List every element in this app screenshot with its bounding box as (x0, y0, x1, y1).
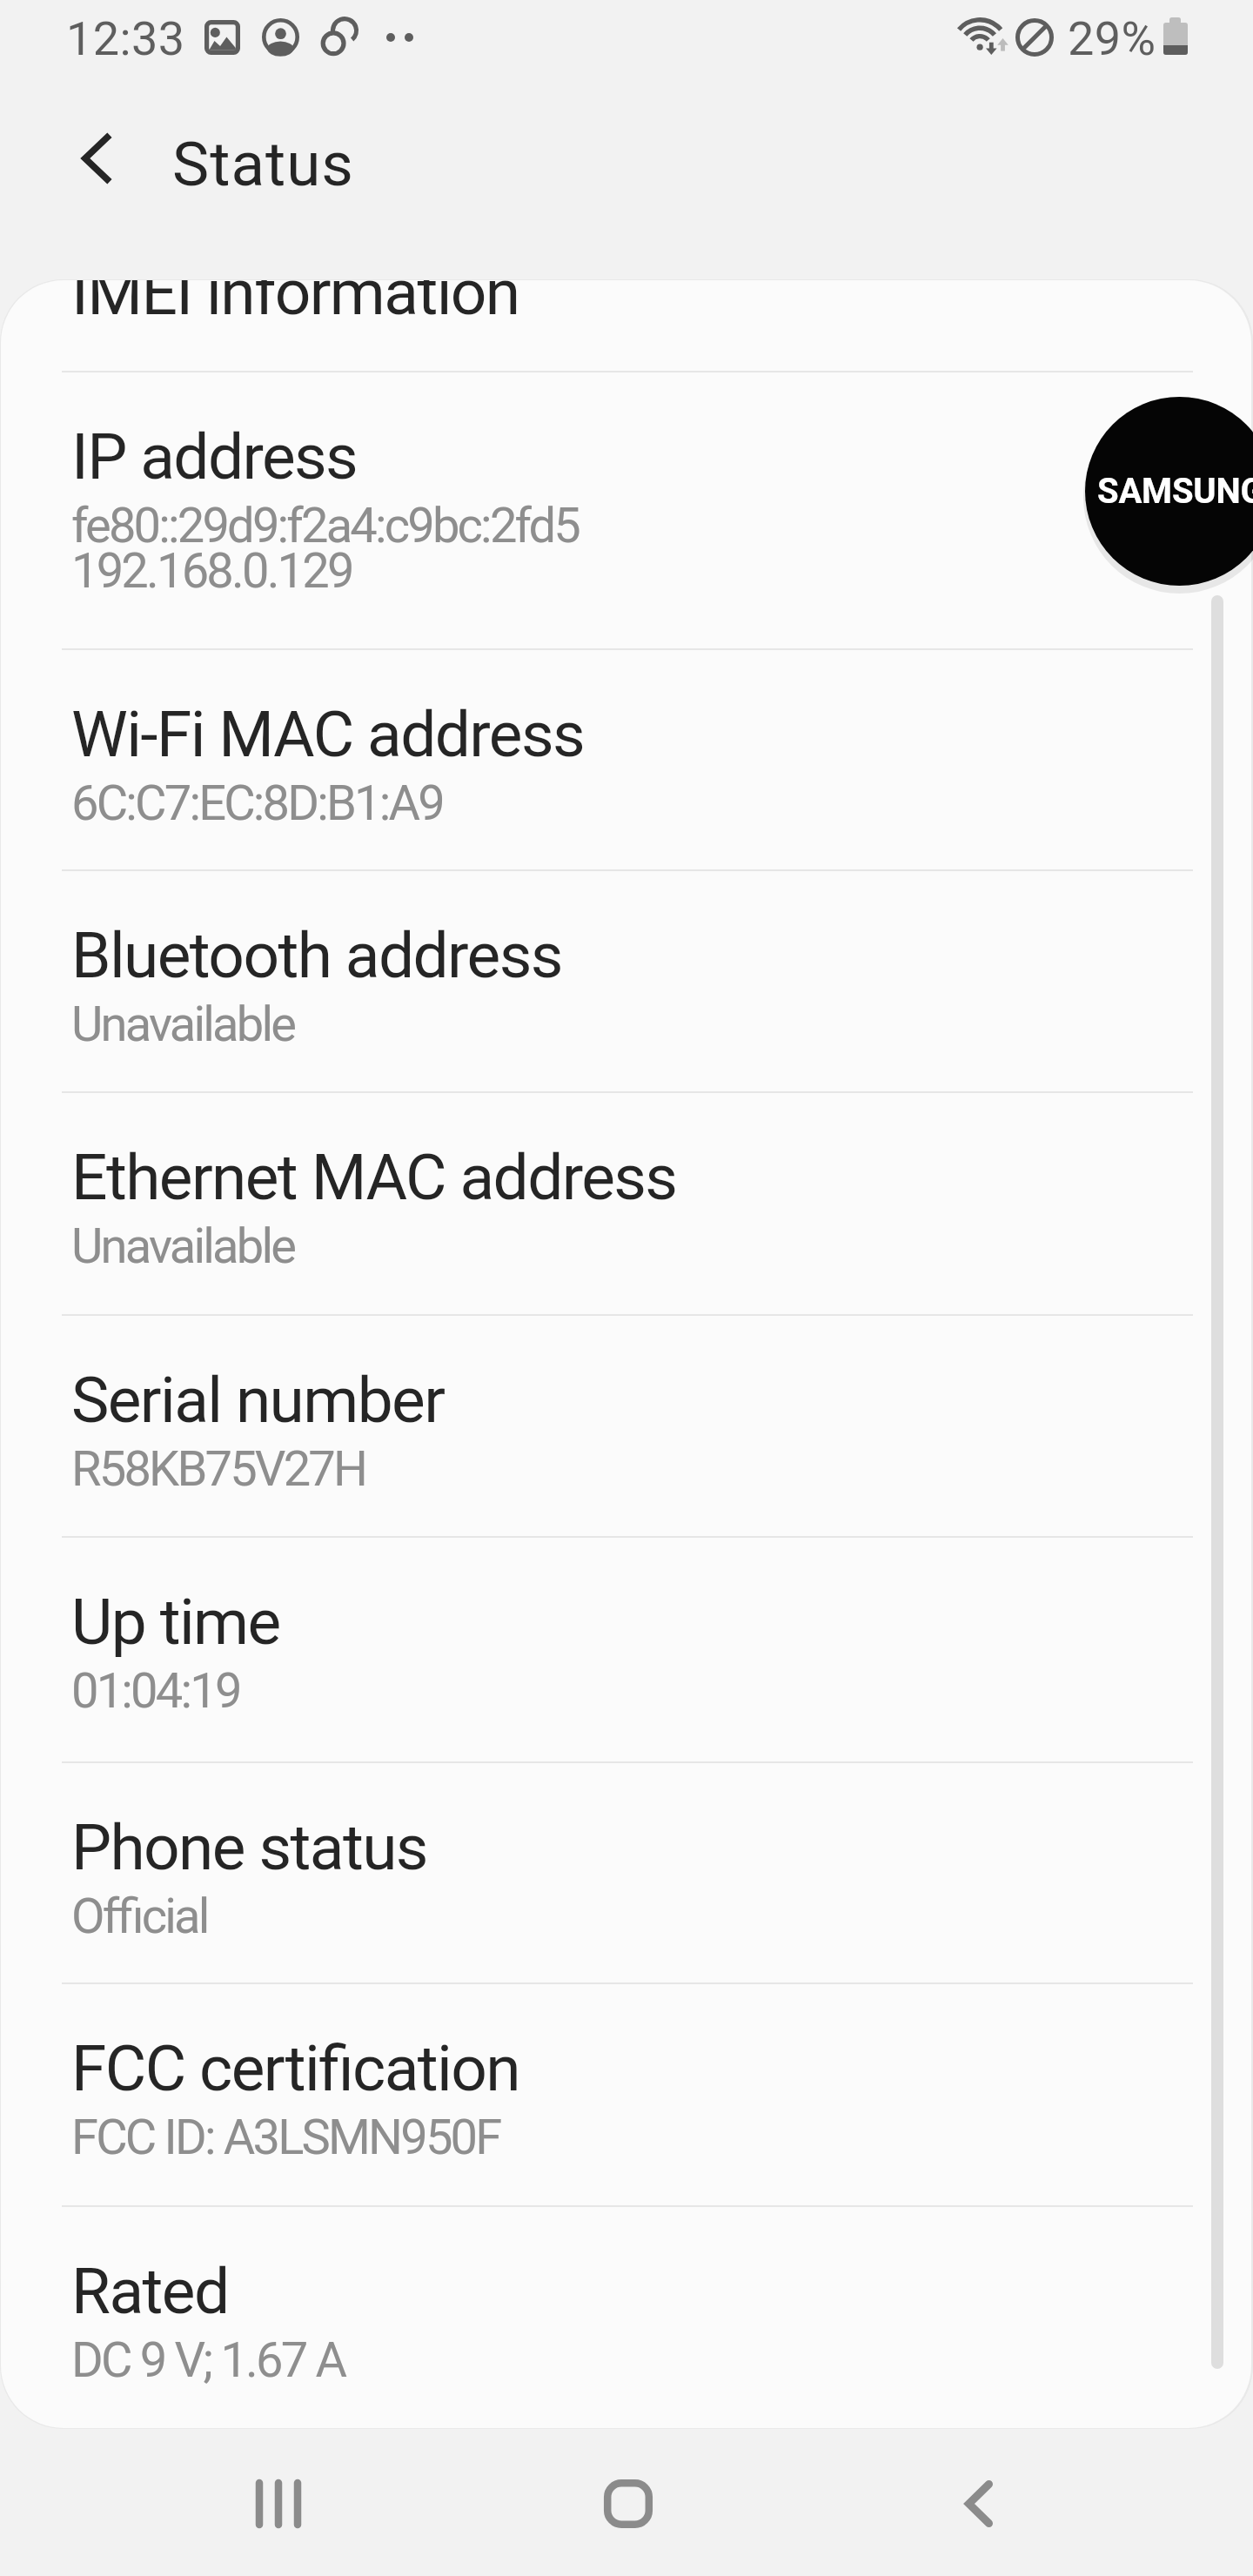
staticText: 12:33 (66, 11, 185, 66)
staticText: IP address (71, 419, 358, 494)
button[interactable]: Samsung (1085, 397, 1253, 586)
staticText: Unavailable (71, 996, 295, 1053)
staticText: 29% (1068, 11, 1156, 66)
button[interactable] (1, 2205, 1251, 2428)
staticText: Serial number (71, 1363, 445, 1438)
staticText: Phone status (71, 1810, 427, 1885)
button[interactable] (1, 1536, 1251, 1761)
staticText: Bluetooth address (71, 918, 562, 993)
staticText: DC 9 V; 1.67 A (71, 2331, 345, 2389)
button[interactable]: Back (874, 2430, 1083, 2576)
staticText: Wi-Fi MAC address (71, 697, 585, 772)
button[interactable] (1, 869, 1251, 1091)
staticText: Up time (71, 1585, 280, 1660)
staticText: FCC certification (71, 2031, 519, 2106)
button[interactable] (1, 371, 1251, 648)
button[interactable] (1, 1761, 1251, 1982)
staticText: Status (172, 128, 355, 200)
button[interactable]: Home (524, 2430, 733, 2576)
staticText: Unavailable (71, 1218, 295, 1275)
staticText: Rated (71, 2254, 229, 2329)
button[interactable] (1, 648, 1251, 869)
button[interactable] (1, 1982, 1251, 2205)
button[interactable]: Recent apps (174, 2430, 383, 2576)
staticText: Official (71, 1888, 208, 1945)
staticText: IMEI information (71, 280, 519, 330)
staticText: 6C:C7:EC:8D:B1:A9 (71, 775, 443, 832)
button[interactable]: Navigate up (56, 118, 136, 198)
button[interactable] (1, 1091, 1251, 1314)
staticText: R58KB75V27H (71, 1440, 366, 1498)
staticText: fe80::29d9:f2a4:c9bc:2fd5 (71, 497, 580, 554)
staticText: Ethernet MAC address (71, 1140, 677, 1215)
staticText: SAMSUNG (1097, 471, 1253, 512)
staticText: FCC ID: A3LSMN950F (71, 2109, 500, 2166)
staticText: 192.168.0.129 (71, 542, 352, 600)
button[interactable] (1, 1314, 1251, 1536)
staticText: 01:04:19 (71, 1662, 240, 1720)
